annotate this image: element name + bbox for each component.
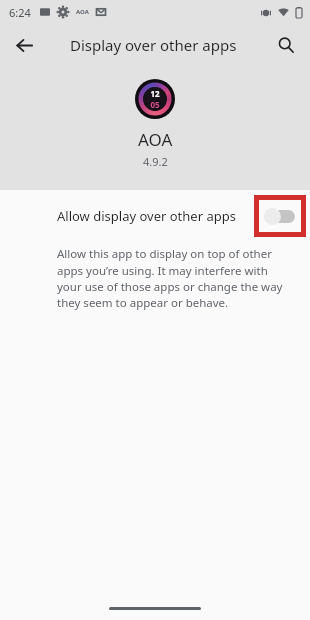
button[interactable]: Search: [270, 29, 302, 61]
staticText: Allow display over other apps: [57, 207, 236, 225]
staticText: AOA: [138, 128, 173, 151]
staticText: 12: [150, 88, 160, 99]
staticText: AOA: [76, 8, 89, 16]
button[interactable]: Back: [8, 29, 40, 61]
button[interactable]: Allow display over other apps toggle: [264, 206, 296, 226]
staticText: Display over other apps: [70, 35, 237, 55]
staticText: 6:24: [9, 5, 31, 20]
button[interactable]: Allow display over other apps: [0, 190, 310, 242]
staticText: Allow this app to display on top of othe…: [57, 246, 294, 310]
staticText: 4.9.2: [143, 154, 168, 169]
staticText: 05: [150, 99, 160, 110]
